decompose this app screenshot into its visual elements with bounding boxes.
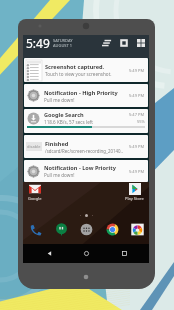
staticText: /sdcard/Rec/screen-recording_20140.. (45, 148, 123, 154)
staticText: Finished (45, 140, 69, 148)
staticText: Play Store (125, 196, 144, 201)
staticText: 5:49 PM (129, 169, 145, 174)
staticText: Google (28, 196, 42, 201)
button[interactable]: Quick settings (136, 38, 146, 48)
staticText: Touch to view your screenshot. (45, 71, 112, 77)
button[interactable]: Home (74, 245, 98, 262)
staticText: Google Search (44, 111, 84, 119)
staticText: 118.6 KB/s, 57 secs left (44, 119, 93, 125)
button[interactable]: disable (24, 135, 148, 158)
staticText: 55% (137, 119, 145, 124)
staticText: Notification - High Priority (44, 89, 118, 97)
staticText: Pull me down! (44, 172, 75, 178)
button[interactable]: All apps (78, 221, 94, 237)
button[interactable]: Google (26, 183, 44, 201)
staticText: AUGUST 1 (53, 43, 73, 48)
button[interactable]: Screen (119, 38, 129, 48)
staticText: 5:49 PM (129, 93, 145, 98)
staticText: 5:49 PM (129, 68, 145, 73)
staticText: Pull me down! (44, 97, 75, 103)
button[interactable]: Hangouts (53, 221, 69, 237)
staticText: 5:49 PM (129, 144, 145, 149)
staticText: SATURDAY (53, 38, 73, 43)
staticText: 5:47 PM (129, 112, 145, 117)
button[interactable]: Recents (112, 245, 136, 262)
button[interactable]: Notification - Low Priority (24, 160, 148, 182)
button[interactable]: Phone (27, 221, 43, 237)
staticText: Notification - Low Priority (44, 164, 116, 172)
button[interactable]: Photos (129, 221, 145, 237)
button[interactable]: Chrome (104, 221, 120, 237)
staticText: 5:49 (26, 35, 50, 51)
button[interactable]: Back (37, 245, 61, 262)
button[interactable]: Screenshot captured. (24, 58, 148, 82)
button[interactable]: Google Search (24, 109, 148, 133)
staticText: disable (27, 144, 41, 149)
button[interactable]: Brightness (102, 38, 112, 48)
button[interactable]: 5:49 (23, 35, 149, 58)
button[interactable]: Play Store (123, 183, 146, 201)
staticText: Screenshot captured. (45, 63, 105, 71)
button[interactable]: Notification - High Priority (24, 84, 148, 107)
